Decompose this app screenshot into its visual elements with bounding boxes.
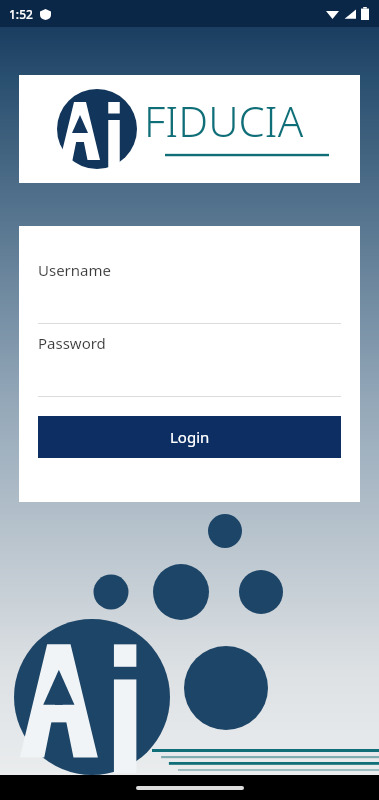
staticText: Password <box>38 333 106 353</box>
staticText: FIDUCIA <box>144 92 304 149</box>
staticText: 1:52 <box>9 6 33 22</box>
button[interactable]: Password <box>38 324 341 397</box>
other: VPN <box>40 9 51 20</box>
button[interactable]: Login <box>38 416 341 458</box>
staticText: Username <box>38 260 111 280</box>
staticText: Login <box>170 427 210 447</box>
button[interactable]: Username <box>38 251 341 324</box>
